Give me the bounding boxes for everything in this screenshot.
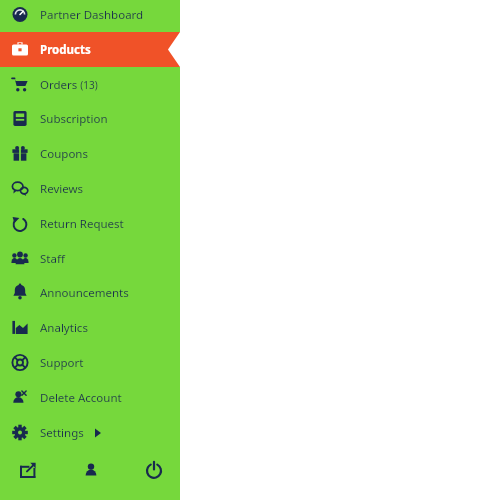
button[interactable]: Profile — [75, 454, 107, 486]
staticText: Delete Account — [40, 390, 122, 406]
button[interactable]: Reviews — [0, 171, 180, 206]
button[interactable]: Delete Account — [0, 380, 180, 415]
button[interactable]: Products — [0, 32, 180, 67]
staticText: Staff — [40, 251, 65, 267]
button[interactable]: Return Request — [0, 206, 180, 241]
staticText: Analytics — [40, 320, 88, 336]
button[interactable]: Settings — [0, 415, 180, 450]
button[interactable]: Partner Dashboard — [0, 0, 180, 32]
button[interactable]: Analytics — [0, 310, 180, 345]
staticText: Announcements — [40, 285, 129, 301]
button[interactable]: Support — [0, 345, 180, 380]
button[interactable]: Logout — [138, 454, 170, 486]
button[interactable]: Staff — [0, 241, 180, 276]
staticText: Support — [40, 355, 84, 371]
staticText: Settings — [40, 425, 84, 441]
staticText: Orders (13) — [40, 77, 98, 93]
staticText: Coupons — [40, 146, 88, 162]
staticText: Reviews — [40, 181, 84, 197]
button[interactable]: Coupons — [0, 136, 180, 171]
staticText: Return Request — [40, 216, 124, 232]
button[interactable]: Visit Store — [12, 454, 44, 486]
button[interactable]: Orders (13) — [0, 67, 180, 102]
staticText: Partner Dashboard — [40, 7, 144, 23]
button[interactable]: Announcements — [0, 275, 180, 310]
button[interactable]: Subscription — [0, 101, 180, 136]
staticText: Products — [40, 42, 91, 58]
staticText: Subscription — [40, 111, 108, 127]
